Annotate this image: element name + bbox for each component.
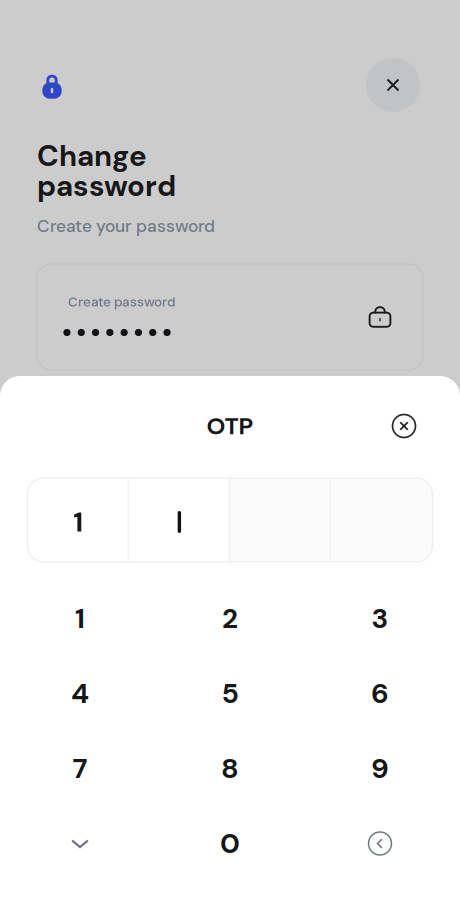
staticText: 3 xyxy=(371,600,388,637)
button[interactable]: Delete xyxy=(305,806,455,881)
button[interactable]: OTP digit 2 xyxy=(129,478,230,562)
staticText: password xyxy=(37,167,176,205)
staticText: 7 xyxy=(72,750,87,787)
button[interactable]: 9 xyxy=(305,731,455,806)
button[interactable]: 6 xyxy=(305,656,455,731)
staticText: Create password xyxy=(68,293,175,311)
staticText: 6 xyxy=(371,675,389,712)
button[interactable]: 3 xyxy=(305,581,455,656)
button[interactable]: 1 xyxy=(5,581,155,656)
staticText: Change xyxy=(37,137,147,175)
button[interactable]: 0 xyxy=(155,806,305,881)
button[interactable]: OTP digit 1 xyxy=(27,478,129,562)
staticText: 0 xyxy=(220,825,240,862)
staticText: Create your password xyxy=(37,215,215,237)
staticText: 9 xyxy=(371,750,389,787)
button[interactable]: Close OTP xyxy=(382,404,426,448)
staticText: 8 xyxy=(221,750,239,787)
button[interactable]: Close xyxy=(366,58,420,112)
button[interactable]: Create password xyxy=(37,264,423,370)
button[interactable]: 5 xyxy=(155,656,305,731)
staticText: 5 xyxy=(221,675,238,712)
button[interactable]: 7 xyxy=(5,731,155,806)
staticText: OTP xyxy=(206,410,253,442)
staticText: 1 xyxy=(73,504,83,540)
staticText: 1 xyxy=(75,600,85,637)
staticText: 2 xyxy=(222,600,238,637)
staticText: 4 xyxy=(71,675,89,712)
button[interactable]: 4 xyxy=(5,656,155,731)
button[interactable]: Hide keyboard xyxy=(5,806,155,881)
button[interactable]: 2 xyxy=(155,581,305,656)
button[interactable]: 8 xyxy=(155,731,305,806)
